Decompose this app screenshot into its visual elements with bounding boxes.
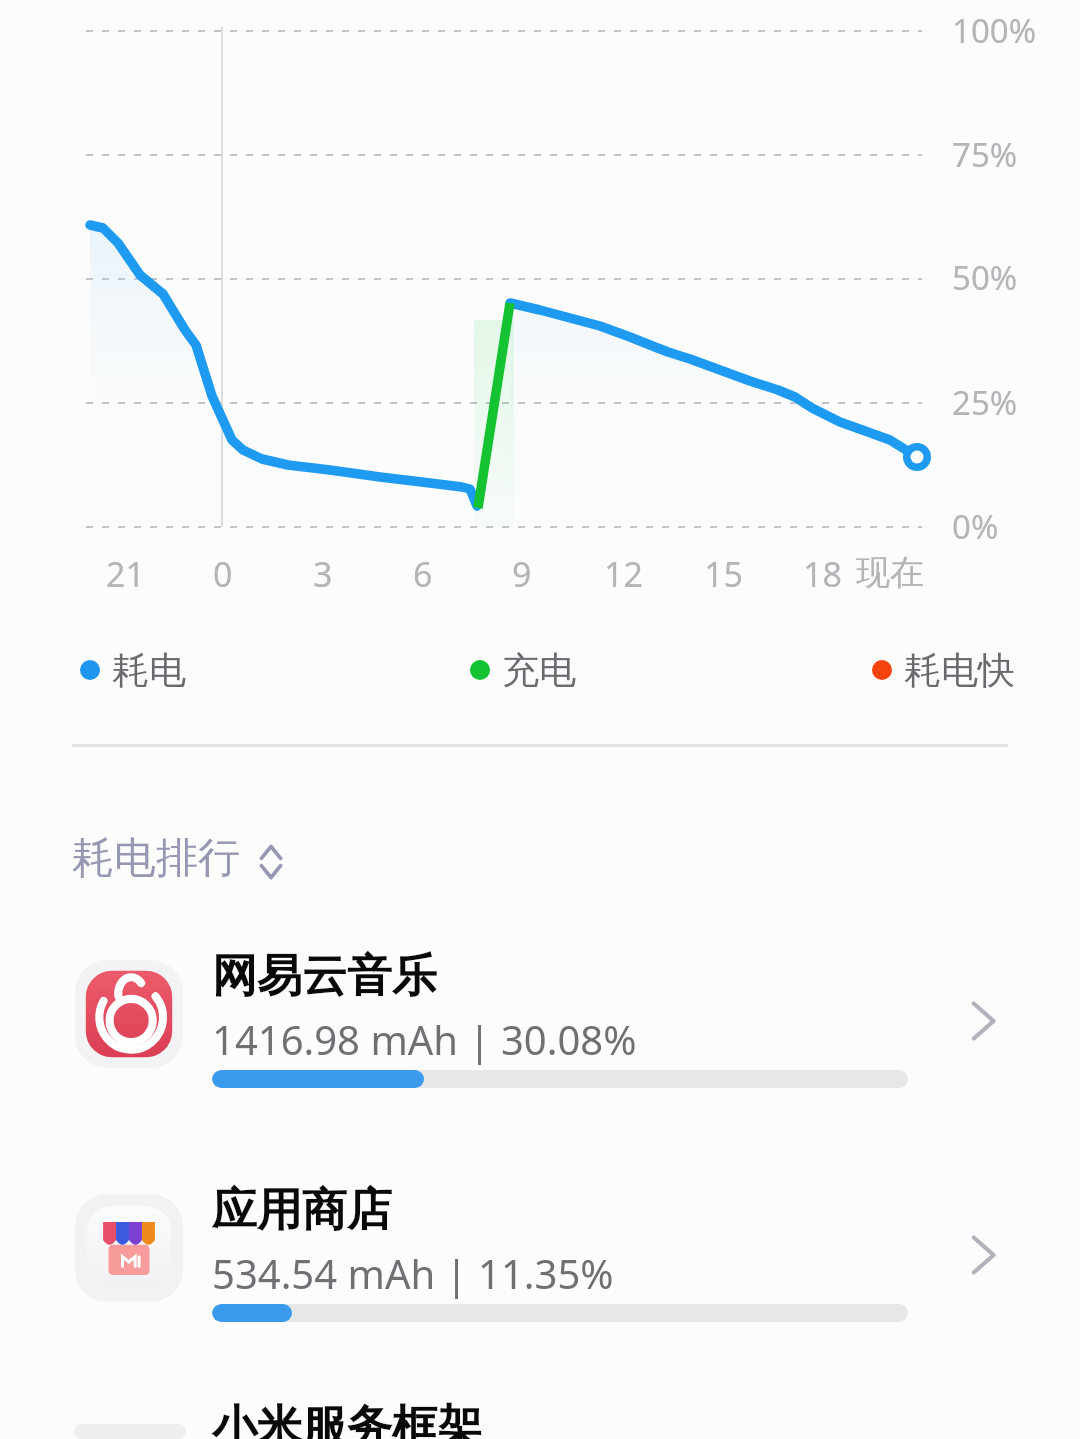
staticText: 小米服务框架 — [212, 1399, 482, 1439]
staticText: 耗电快 — [904, 647, 1015, 694]
staticText: 12 — [604, 551, 643, 597]
staticText: 0% — [952, 504, 999, 549]
staticText: 18 — [803, 551, 842, 597]
staticText: 1416.98 mAh | 30.08% — [212, 1012, 637, 1066]
button[interactable]: 网易云音乐 — [40, 940, 1040, 1150]
staticText: 现在 — [856, 551, 924, 594]
staticText: 充电 — [502, 647, 576, 694]
staticText: 6 — [413, 551, 433, 597]
staticText: 21 — [106, 551, 145, 597]
staticText: 耗电排行 — [72, 832, 240, 885]
button[interactable]: 耗电 — [72, 640, 252, 700]
staticText: 50% — [952, 255, 1018, 300]
staticText: 75% — [952, 132, 1018, 177]
other: 查看详情 — [968, 1232, 1000, 1278]
staticText: 0 — [213, 551, 233, 597]
staticText: 网易云音乐 — [212, 948, 437, 1005]
staticText: 9 — [512, 551, 532, 597]
button[interactable]: 耗电排行 — [62, 822, 298, 892]
staticText: 534.54 mAh | 11.35% — [212, 1246, 614, 1300]
staticText: 耗电 — [112, 647, 186, 694]
button[interactable]: 应用商店 — [40, 1174, 1040, 1384]
button[interactable]: 耗电快 — [864, 640, 1044, 700]
other: 查看详情 — [968, 998, 1000, 1044]
button[interactable]: 充电 — [462, 640, 642, 700]
staticText: 25% — [952, 380, 1018, 425]
staticText: 应用商店 — [212, 1182, 392, 1239]
staticText: 3 — [313, 551, 333, 597]
staticText: 15 — [704, 551, 743, 597]
staticText: 100% — [952, 8, 1037, 53]
